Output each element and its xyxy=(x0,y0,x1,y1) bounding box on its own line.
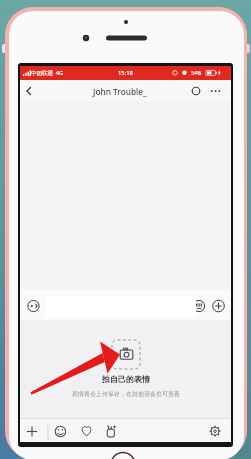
button[interactable] xyxy=(211,299,226,314)
staticText: 15:18 xyxy=(118,69,133,77)
button[interactable]: John Trouble_ xyxy=(93,86,147,97)
staticText: 表情将会上传保存，在其他设备也可查看 xyxy=(72,390,180,398)
button[interactable] xyxy=(208,84,223,98)
button[interactable] xyxy=(100,420,120,440)
staticText: 中国联通 4G xyxy=(31,69,64,77)
button[interactable] xyxy=(112,340,140,369)
button[interactable] xyxy=(26,299,41,314)
staticText: John Trouble_ xyxy=(93,86,147,97)
button[interactable] xyxy=(189,84,203,98)
button[interactable] xyxy=(76,420,96,440)
button[interactable] xyxy=(205,420,225,440)
staticText: 54% xyxy=(191,69,202,76)
staticText: 拍自己的表情 xyxy=(102,374,150,384)
button[interactable] xyxy=(50,420,70,440)
button[interactable] xyxy=(22,420,42,440)
button[interactable] xyxy=(192,299,207,314)
button[interactable] xyxy=(21,84,36,99)
